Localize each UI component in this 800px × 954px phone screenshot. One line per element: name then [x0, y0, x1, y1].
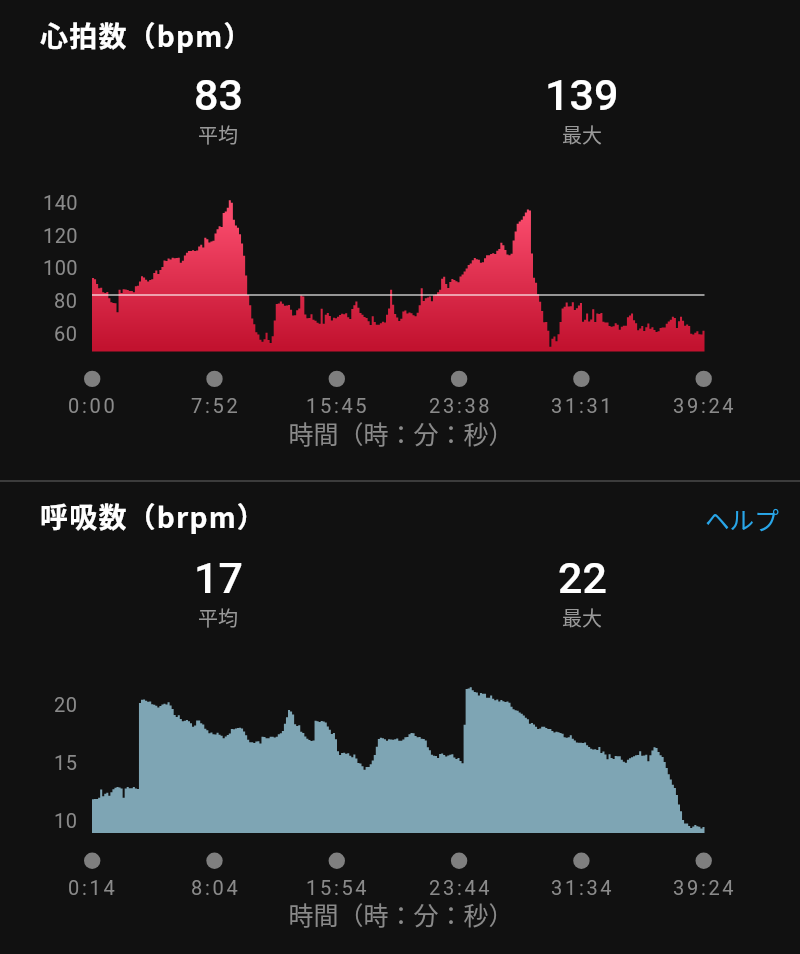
- staticText: 時間（時：分：秒）: [288, 896, 514, 932]
- staticText: 23:38: [429, 394, 493, 417]
- staticText: 20: [54, 693, 78, 716]
- staticText: 22: [558, 553, 607, 603]
- staticText: 8:04: [191, 876, 241, 899]
- staticText: 10: [54, 809, 78, 832]
- staticText: 15:45: [306, 394, 370, 417]
- staticText: ヘルプ: [705, 501, 779, 537]
- staticText: 39:24: [673, 394, 737, 417]
- staticText: 23:44: [429, 876, 493, 899]
- staticText: 7:52: [191, 394, 241, 417]
- staticText: 最大: [562, 120, 602, 149]
- staticText: 呼吸数（brpm）: [40, 496, 267, 537]
- staticText: 100: [43, 256, 78, 279]
- staticText: 17: [194, 553, 243, 603]
- staticText: 140: [43, 191, 78, 214]
- staticText: 31:31: [551, 394, 615, 417]
- staticText: 15:54: [306, 876, 370, 899]
- staticText: 心拍数（bpm）: [40, 15, 253, 56]
- staticText: 39:24: [673, 876, 737, 899]
- staticText: 139: [545, 70, 619, 120]
- staticText: 80: [54, 289, 78, 312]
- staticText: 120: [43, 224, 78, 247]
- staticText: 0:00: [68, 394, 118, 417]
- staticText: 60: [54, 322, 78, 345]
- staticText: 15: [54, 751, 78, 774]
- staticText: 時間（時：分：秒）: [288, 415, 514, 451]
- staticText: 0:14: [68, 876, 118, 899]
- staticText: 平均: [198, 120, 238, 149]
- staticText: 最大: [562, 603, 602, 632]
- staticText: 31:34: [551, 876, 615, 899]
- staticText: 平均: [198, 603, 238, 632]
- button[interactable]: ヘルプ: [705, 501, 779, 537]
- staticText: 83: [194, 70, 243, 120]
